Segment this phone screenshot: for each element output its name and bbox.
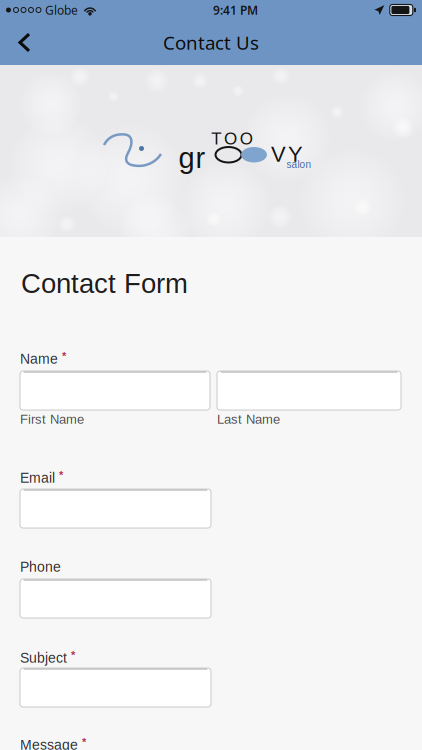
staticText: salon — [286, 159, 311, 170]
staticText: * — [62, 350, 66, 362]
staticText: 9:41 PM — [213, 2, 258, 18]
staticText: Email — [20, 470, 55, 486]
staticText: Contact Form — [21, 268, 188, 299]
staticText: Contact Us — [163, 30, 259, 55]
staticText: VY — [271, 142, 303, 166]
staticText: Message — [20, 737, 78, 750]
button[interactable] — [20, 489, 211, 528]
staticText: TOO — [211, 129, 253, 148]
staticText: * — [71, 649, 75, 661]
button[interactable] — [217, 371, 401, 410]
button[interactable] — [20, 579, 211, 618]
staticText: * — [82, 736, 86, 748]
staticText: Name — [20, 351, 58, 367]
staticText: First Name — [20, 412, 84, 426]
staticText: Last Name — [217, 412, 280, 426]
staticText: Globe — [45, 2, 78, 18]
button[interactable]: Back — [0, 20, 51, 64]
button[interactable] — [20, 371, 210, 410]
staticText: Phone — [20, 559, 61, 575]
button[interactable] — [20, 668, 211, 707]
staticText: Subject — [20, 650, 67, 666]
staticText: * — [59, 469, 63, 481]
staticText: gr — [178, 142, 205, 174]
